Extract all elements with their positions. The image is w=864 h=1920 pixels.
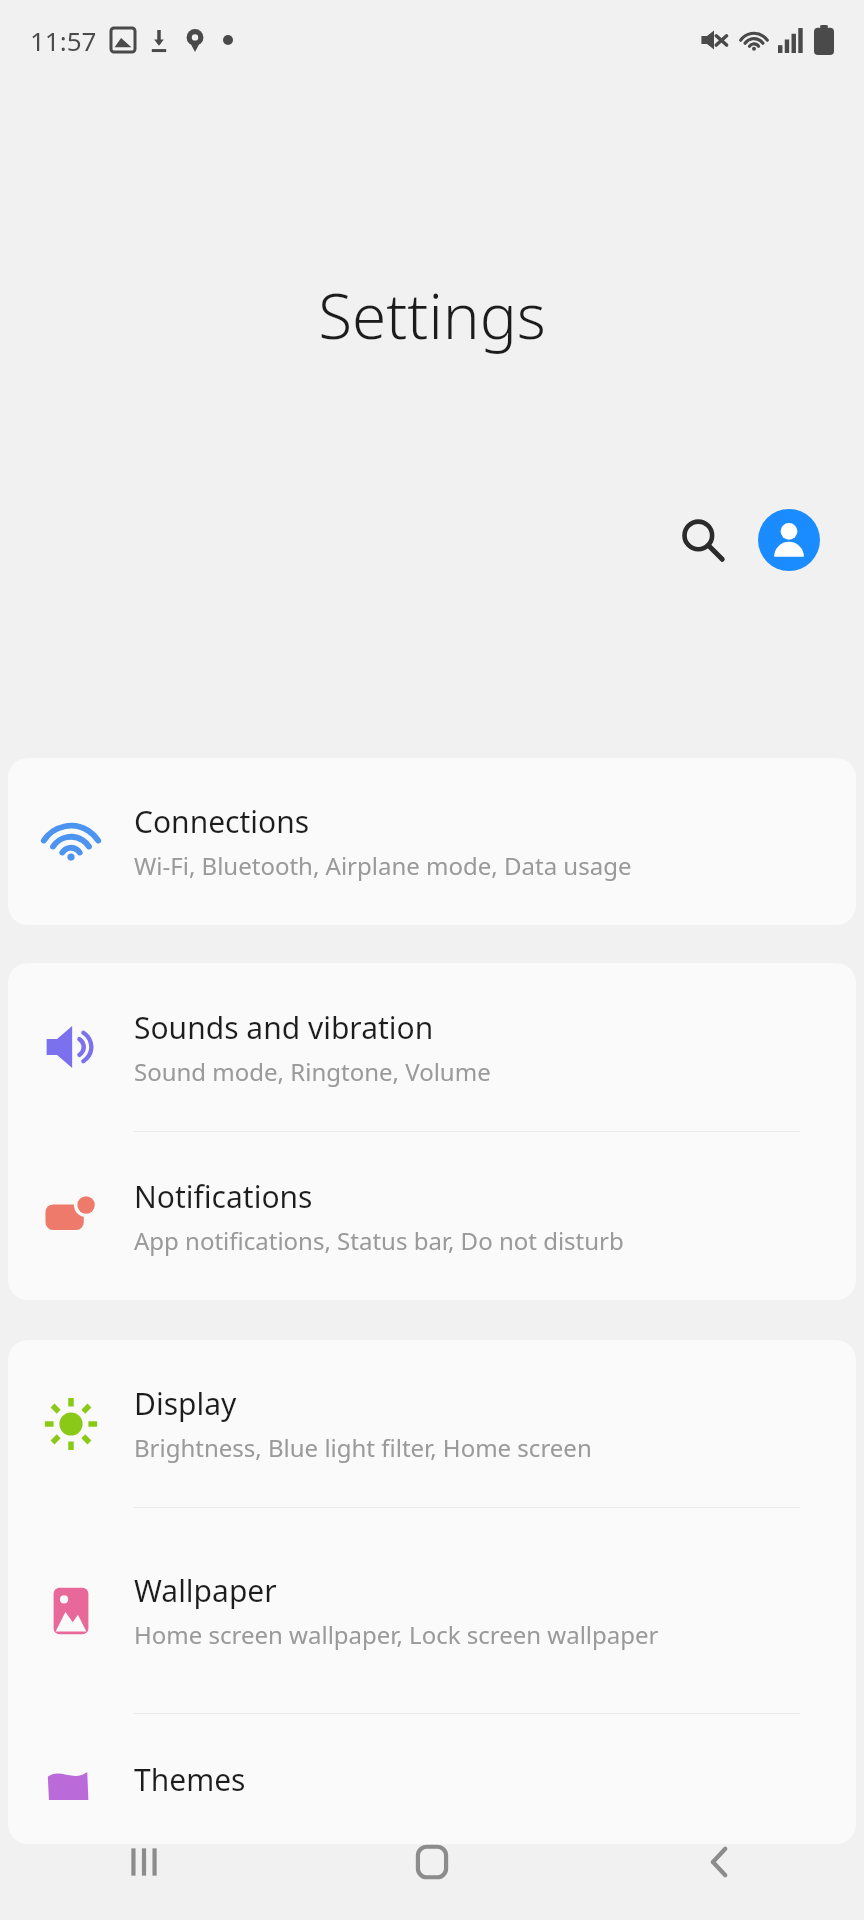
staticText: Settings <box>318 273 546 357</box>
button[interactable]: Connections <box>8 758 856 925</box>
staticText: Wi-Fi, Bluetooth, Airplane mode, Data us… <box>134 849 632 882</box>
staticText: App notifications, Status bar, Do not di… <box>134 1224 624 1257</box>
staticText: Display <box>134 1383 237 1424</box>
button[interactable]: Notifications <box>8 1132 856 1300</box>
button[interactable]: Search <box>666 504 738 576</box>
staticText: 11:57 <box>30 23 97 58</box>
staticText: Notifications <box>134 1176 313 1217</box>
button[interactable]: Wallpaper <box>8 1508 856 1713</box>
button[interactable]: Recents <box>0 1803 288 1920</box>
staticText: Connections <box>134 801 310 842</box>
staticText: Sounds and vibration <box>134 1007 434 1048</box>
staticText: Wallpaper <box>134 1570 277 1611</box>
staticText: Brightness, Blue light filter, Home scre… <box>134 1431 592 1464</box>
button[interactable]: Display <box>8 1340 856 1507</box>
button[interactable]: Themes <box>8 1714 856 1844</box>
staticText: Sound mode, Ringtone, Volume <box>134 1055 491 1088</box>
staticText: Themes <box>134 1759 246 1800</box>
button[interactable]: Sounds and vibration <box>8 963 856 1131</box>
button[interactable]: Back <box>576 1803 864 1920</box>
button[interactable]: Profile <box>753 504 825 576</box>
button[interactable]: Home <box>288 1803 576 1920</box>
staticText: Home screen wallpaper, Lock screen wallp… <box>134 1618 659 1651</box>
